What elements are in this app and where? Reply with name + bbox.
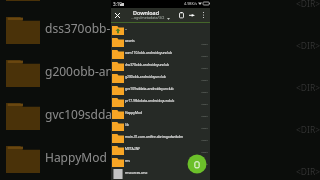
button[interactable]: Copy to clipboard xyxy=(176,9,186,21)
button[interactable]: g200obb-androidxyunclub xyxy=(111,71,210,83)
staticText: resources.arsc xyxy=(125,170,148,174)
button[interactable]: resources.arsc xyxy=(111,167,210,179)
button[interactable]: dss370obb-androidxyunclub xyxy=(111,59,210,71)
staticText: <DIR> xyxy=(296,124,320,136)
button[interactable]: assets xyxy=(111,35,210,47)
staticText: .. xyxy=(125,26,127,30)
staticText: pr17.9fbbdata-androidxyunclub xyxy=(125,98,175,102)
staticText: <DIR> xyxy=(201,66,209,69)
staticText: <DIR> xyxy=(296,40,320,52)
staticText: <DIR> xyxy=(296,166,320,178)
button[interactable]: HappyMod xyxy=(111,107,210,119)
staticText: <DIR> xyxy=(201,42,209,45)
staticText: <DIR> xyxy=(296,82,320,94)
button[interactable]: gvc109sddata-androidxyunclub xyxy=(111,83,210,95)
staticText: lib xyxy=(125,122,129,126)
staticText: main.31.com.antfee.xbrimgodwdsdm xyxy=(125,134,184,138)
staticText: <DIR> xyxy=(201,138,209,141)
staticText: <DIR> xyxy=(201,102,209,105)
button[interactable]: More options xyxy=(199,9,208,21)
staticText: ...ogs/metadata/3/2 xyxy=(131,15,165,20)
staticText: res xyxy=(125,158,130,162)
staticText: com110.lobb.androidxyunclub xyxy=(125,50,173,54)
button[interactable]: main.31.com.antfee.xbrimgodwdsdm xyxy=(111,131,210,143)
staticText: 4.98K/s xyxy=(184,1,198,6)
staticText: HappyMod xyxy=(45,149,107,165)
staticText: <DIR> xyxy=(201,90,209,93)
staticText: dss370obb-androidxyunclub xyxy=(125,62,170,66)
button[interactable]: res xyxy=(111,155,210,167)
staticText: 3:19 xyxy=(113,1,122,7)
staticText: g200obb-androidxyunclub xyxy=(125,74,166,78)
button[interactable]: lib xyxy=(111,119,210,131)
staticText: gvc109sddata-androidxyunclub xyxy=(125,86,174,90)
staticText: META-INF xyxy=(125,146,140,150)
staticText: <DIR> xyxy=(201,150,209,153)
staticText: dss370obb- xyxy=(45,20,111,36)
staticText: <DIR> xyxy=(296,0,320,10)
staticText: HappyMod xyxy=(125,110,142,114)
button[interactable]: pr17.9fbbdata-androidxyunclub xyxy=(111,95,210,107)
button[interactable]: com110.lobb.androidxyunclub xyxy=(111,47,210,59)
button[interactable]: Close xyxy=(113,9,122,21)
staticText: <DIR> xyxy=(201,162,209,165)
staticText: <DIR> xyxy=(201,78,209,81)
staticText: g200obb-an xyxy=(45,63,114,79)
staticText: <DIR> xyxy=(201,126,209,129)
staticText: gvc109sdda xyxy=(45,106,113,122)
button[interactable]: Move xyxy=(187,9,197,21)
staticText: assets xyxy=(125,38,135,42)
staticText: <DIR> xyxy=(201,114,209,117)
button[interactable]: Paste xyxy=(187,154,207,174)
staticText: Download xyxy=(133,9,160,16)
button[interactable]: META-INF xyxy=(111,143,210,155)
staticText: <DIR> xyxy=(201,54,209,57)
button[interactable]: .. xyxy=(111,23,210,35)
